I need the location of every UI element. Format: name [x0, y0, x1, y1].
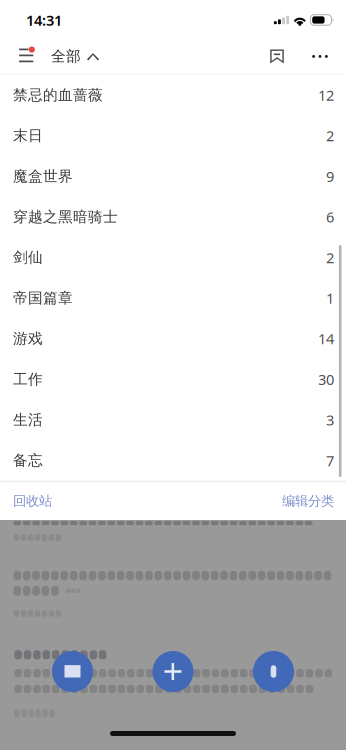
staticText: 30: [318, 369, 334, 389]
staticText: 编辑分类: [282, 493, 334, 509]
staticText: 全部: [51, 47, 81, 65]
button[interactable]: 剑仙: [0, 237, 346, 278]
staticText: 7: [326, 451, 334, 470]
staticText: 剑仙: [13, 248, 43, 266]
staticText: 6: [326, 207, 334, 227]
button[interactable]: 工作: [0, 359, 346, 399]
button[interactable]: 魔盒世界: [0, 156, 346, 196]
staticText: 9: [326, 166, 334, 186]
button[interactable]: More: [303, 39, 337, 74]
staticText: 2: [326, 126, 334, 145]
button[interactable]: 备忘: [0, 440, 346, 481]
staticText: 回收站: [13, 493, 52, 509]
staticText: 游戏: [13, 330, 43, 348]
button[interactable]: 全部: [0, 39, 100, 74]
button[interactable]: 生活: [0, 399, 346, 440]
button[interactable]: 编辑分类: [282, 482, 346, 521]
button[interactable]: 帝国篇章: [0, 278, 346, 318]
staticText: 魔盒世界: [13, 167, 73, 185]
staticText: 2: [326, 248, 334, 267]
button[interactable]: 禁忌的血蔷薇: [0, 75, 346, 115]
staticText: 12: [318, 85, 334, 105]
button[interactable]: 游戏: [0, 318, 346, 359]
button[interactable]: New note: [152, 651, 193, 692]
staticText: 1: [326, 288, 334, 308]
staticText: 禁忌的血蔷薇: [13, 86, 103, 104]
staticText: 穿越之黑暗骑士: [13, 208, 118, 226]
staticText: 工作: [13, 370, 43, 388]
staticText: 14:31: [26, 10, 62, 30]
button[interactable]: Insert image: [52, 651, 93, 692]
staticText: 3: [326, 410, 334, 430]
staticText: 帝国篇章: [13, 289, 73, 307]
button[interactable]: Voice note: [253, 651, 294, 692]
button[interactable]: Bookmarks: [260, 39, 294, 74]
staticText: 备忘: [13, 451, 43, 469]
button[interactable]: 穿越之黑暗骑士: [0, 196, 346, 237]
staticText: 末日: [13, 127, 43, 145]
button[interactable]: 末日: [0, 115, 346, 156]
button[interactable]: 回收站: [0, 482, 52, 521]
staticText: 14: [318, 329, 334, 348]
staticText: 生活: [13, 411, 43, 429]
